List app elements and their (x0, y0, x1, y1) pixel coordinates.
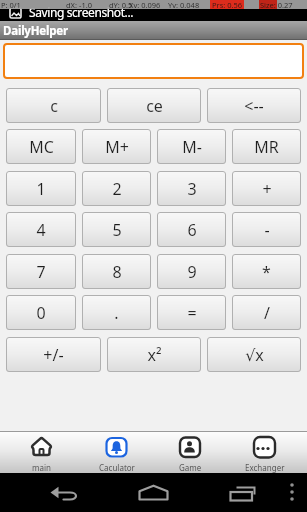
staticText: 6 (187, 219, 197, 241)
staticText: MR (254, 136, 279, 158)
staticText: / (264, 302, 270, 324)
staticText: dX: -1.0 (66, 0, 92, 9)
staticText: dY: 0.5 (109, 0, 133, 9)
staticText: 1 (36, 178, 46, 200)
staticText: x² (147, 344, 162, 366)
staticText: 8 (112, 261, 122, 283)
staticText: = (187, 302, 197, 324)
staticText: Exchanger (245, 462, 285, 473)
staticText: DailyHelper (3, 23, 68, 39)
staticText: M- (182, 136, 202, 158)
staticText: +/- (43, 344, 64, 366)
staticText: Game (179, 462, 202, 473)
staticText: - (264, 219, 270, 241)
staticText: 9 (187, 261, 197, 283)
staticText: √x (245, 344, 264, 366)
staticText: 3 (187, 178, 197, 200)
staticText: + (262, 178, 272, 200)
staticText: M+ (105, 136, 129, 158)
staticText: 4 (36, 219, 46, 241)
staticText: ce (146, 95, 163, 117)
staticText: c (50, 95, 58, 117)
staticText: Caculator (99, 462, 135, 473)
staticText: Yv: 0.048 (168, 0, 200, 9)
staticText: * (262, 261, 271, 283)
staticText: Xv: 0.096 (129, 0, 161, 9)
staticText: 0 (36, 302, 46, 324)
staticText: main (32, 462, 51, 473)
staticText: 2 (112, 178, 122, 200)
staticText: 5 (112, 219, 122, 241)
staticText: MC (29, 136, 54, 158)
staticText: 7 (36, 261, 46, 283)
staticText: Prs: 0.56 (212, 0, 243, 9)
staticText: Size: 0.27 (260, 0, 293, 9)
staticText: Saving screenshot... (29, 4, 134, 20)
staticText: <-- (244, 95, 264, 117)
staticText: . (114, 302, 119, 324)
staticText: P: 0/1 (1, 0, 21, 9)
